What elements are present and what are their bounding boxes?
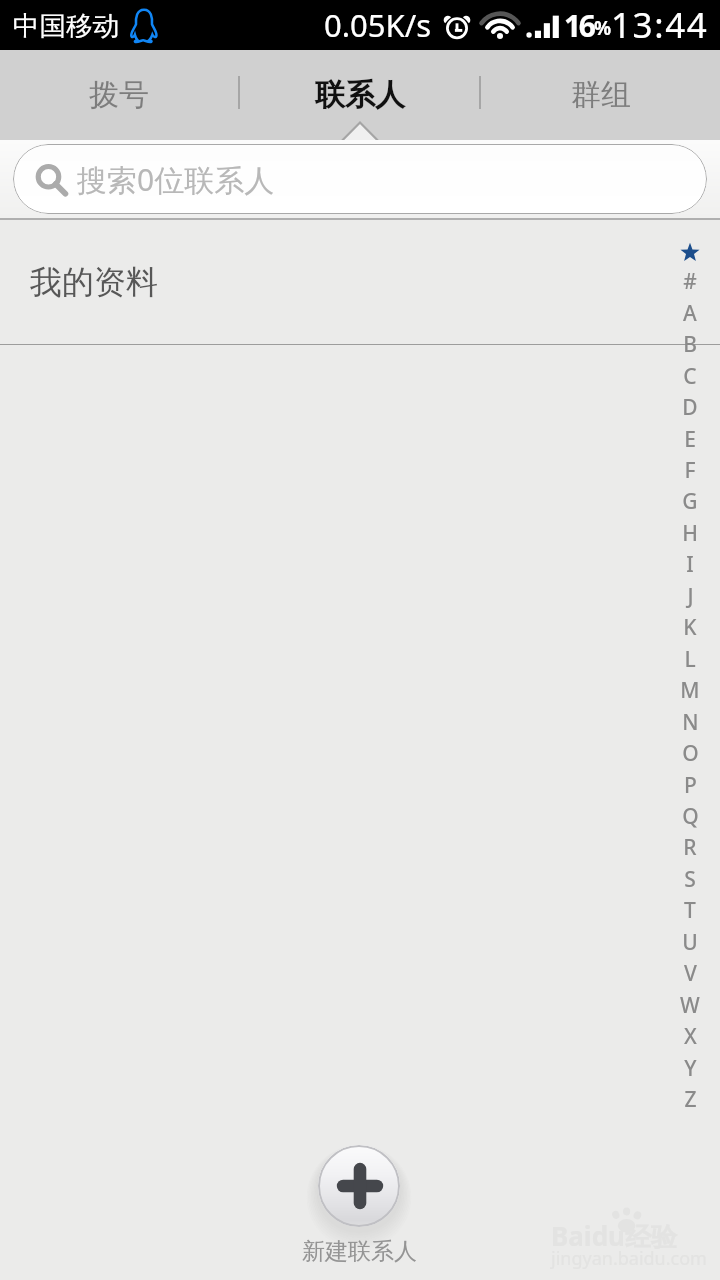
button[interactable]: Y [675, 1053, 705, 1084]
button[interactable]: Q [675, 801, 705, 832]
button[interactable]: L [675, 644, 705, 675]
staticText: 搜索0位联系人 [77, 159, 275, 200]
staticText: Baidu经验 [551, 1218, 677, 1254]
staticText: I [686, 550, 694, 579]
button[interactable]: B [675, 329, 705, 360]
button[interactable]: I [675, 549, 705, 580]
staticText: 16 [564, 5, 594, 46]
staticText: O [682, 739, 699, 768]
button[interactable]: T [675, 895, 705, 926]
button[interactable]: # [675, 266, 705, 297]
staticText: H [682, 519, 698, 548]
staticText: 我的资料 [30, 262, 158, 302]
staticText: U [682, 928, 698, 957]
button[interactable]: N [675, 707, 705, 738]
staticText: N [682, 708, 699, 737]
button[interactable]: W [675, 990, 705, 1021]
button[interactable]: V [675, 958, 705, 989]
button[interactable]: 我的资料 [0, 220, 720, 344]
button[interactable]: O [675, 738, 705, 769]
staticText: K [683, 613, 697, 642]
staticText: R [683, 833, 697, 862]
staticText: % [594, 15, 611, 41]
button[interactable]: H [675, 518, 705, 549]
staticText: Z [684, 1085, 697, 1114]
button[interactable]: 新建联系人 [318, 1145, 400, 1227]
button[interactable]: C [675, 361, 705, 392]
staticText: # [683, 267, 697, 296]
button[interactable]: 拨号 [0, 50, 238, 140]
button[interactable]: 联系人 [240, 50, 479, 140]
button[interactable]: 搜索0位联系人 [13, 144, 707, 214]
button[interactable]: Z [675, 1084, 705, 1115]
staticText: L [684, 645, 696, 674]
staticText: 13:44 [611, 1, 709, 49]
staticText: J [687, 582, 694, 611]
button[interactable]: 收藏 [675, 235, 705, 266]
staticText: 中国移动 [13, 9, 119, 42]
button[interactable]: P [675, 770, 705, 801]
staticText: 拨号 [89, 76, 149, 114]
staticText: 新建联系人 [302, 1237, 417, 1266]
staticText: 联系人 [315, 76, 405, 114]
button[interactable]: K [675, 612, 705, 643]
staticText: 群组 [571, 76, 631, 114]
button[interactable]: A [675, 298, 705, 329]
button[interactable]: X [675, 1021, 705, 1052]
staticText: P [684, 771, 697, 800]
staticText: A [683, 299, 697, 328]
staticText: D [682, 393, 698, 422]
button[interactable]: M [675, 675, 705, 706]
staticText: W [680, 991, 700, 1020]
button[interactable]: 群组 [481, 50, 720, 140]
button[interactable]: D [675, 392, 705, 423]
staticText: F [684, 456, 696, 485]
button[interactable]: U [675, 927, 705, 958]
staticText: X [684, 1022, 697, 1051]
staticText: M [680, 676, 700, 705]
staticText: T [684, 896, 696, 925]
staticText: Q [682, 802, 699, 831]
staticText: B [683, 330, 697, 359]
staticText: E [684, 425, 696, 454]
button[interactable]: G [675, 486, 705, 517]
button[interactable]: R [675, 832, 705, 863]
button[interactable]: S [675, 864, 705, 895]
button[interactable]: E [675, 424, 705, 455]
button[interactable]: F [675, 455, 705, 486]
staticText: Y [684, 1054, 697, 1083]
staticText: G [682, 487, 698, 516]
staticText: S [684, 865, 696, 894]
staticText: C [683, 362, 697, 391]
button[interactable]: J [675, 581, 705, 612]
staticText: 0.05K/s [324, 4, 432, 46]
staticText: V [684, 959, 697, 988]
